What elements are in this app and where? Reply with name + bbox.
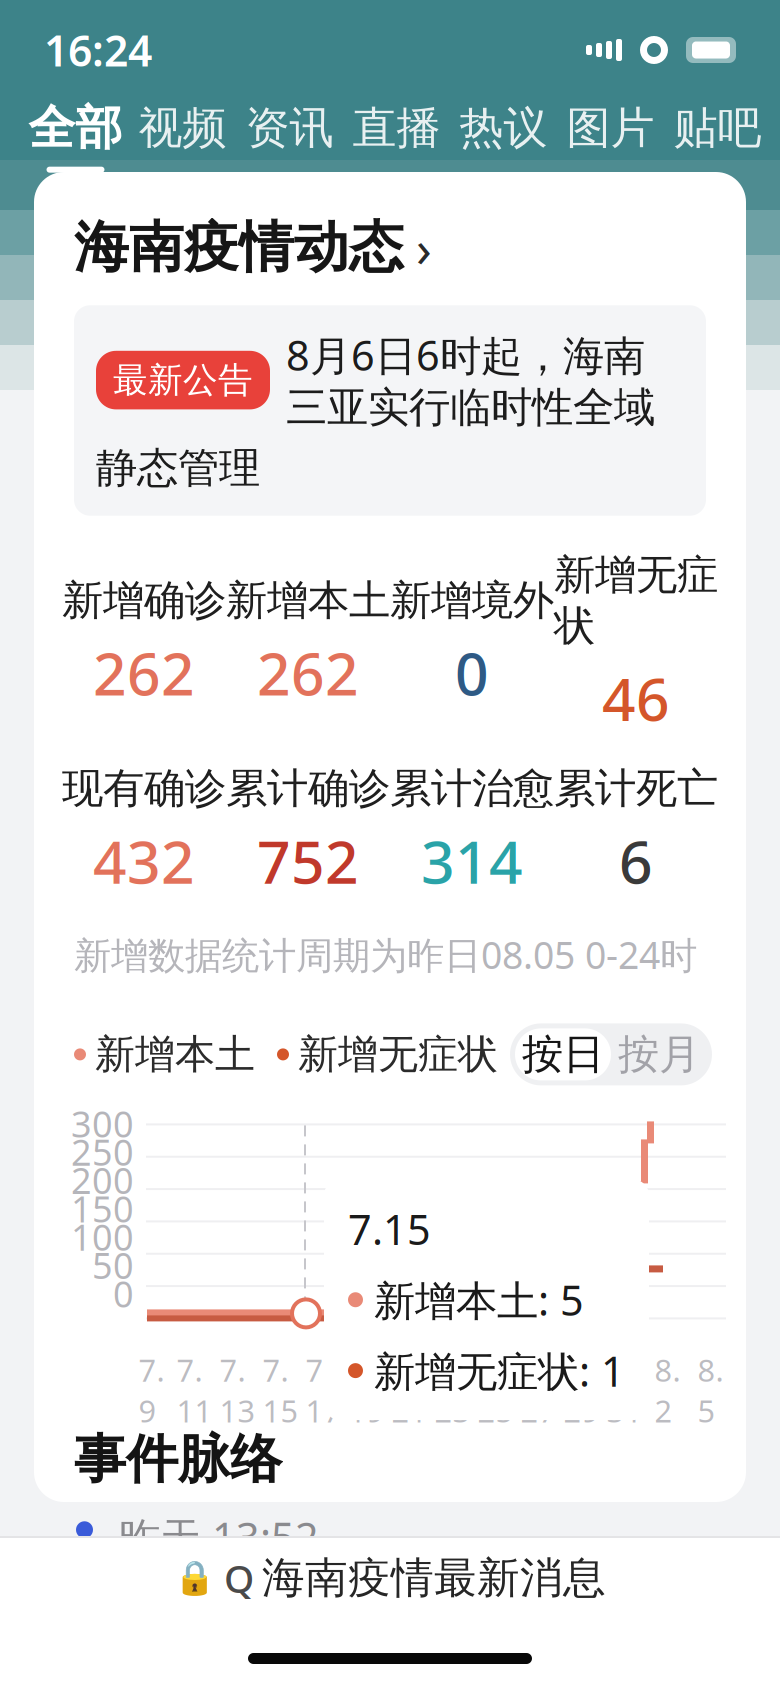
staticText: 海南疫情最新消息 — [262, 1552, 606, 1604]
staticText: 7.11 — [176, 1349, 212, 1431]
staticText: 7.15 — [348, 1201, 431, 1256]
staticText: 热议 — [459, 101, 547, 155]
staticText: 16:24 — [44, 22, 152, 78]
staticText: 毒株传播力略强于既往毒株 — [434, 1576, 704, 1688]
staticText: 7.13 — [219, 1349, 255, 1431]
staticText: 最新公告 — [113, 359, 253, 401]
staticText: 150 — [71, 1184, 134, 1232]
staticText: 0 — [113, 1269, 134, 1317]
staticText: 新增本土 — [95, 1030, 255, 1079]
staticText: 按月 — [618, 1029, 700, 1080]
staticText: 疫情 — [344, 1604, 434, 1660]
staticText: 8.5 — [697, 1349, 723, 1431]
staticText: 46 — [602, 659, 670, 737]
staticText: 新增确诊 — [62, 575, 226, 626]
staticText: › — [416, 214, 432, 281]
staticText: 100 — [71, 1213, 134, 1261]
staticText: 累计治愈 — [390, 763, 554, 814]
staticText: Q — [224, 1552, 254, 1604]
staticText: ：本轮 — [209, 1604, 344, 1660]
button[interactable]: 海南疫情动态 — [34, 172, 746, 305]
button[interactable]: 图片 — [557, 100, 664, 172]
staticText: 7.19 — [348, 1349, 384, 1431]
staticText: 新增无症状 — [554, 550, 718, 651]
button[interactable]: 直播 — [343, 100, 450, 172]
button[interactable]: 全部 — [22, 100, 129, 172]
staticText: 新增境外 — [390, 575, 554, 626]
staticText: 8.2 — [654, 1349, 680, 1431]
staticText: 262 — [257, 634, 359, 712]
button[interactable]: 最新公告 — [34, 305, 706, 516]
staticText: 7.15 — [262, 1349, 298, 1431]
staticText: 262 — [93, 634, 195, 712]
button[interactable]: 视频 — [129, 100, 236, 172]
staticText: 7.23 — [434, 1349, 470, 1431]
staticText: 🔒 — [174, 1559, 216, 1597]
staticText: 0 — [455, 634, 489, 712]
staticText: 视频 — [138, 101, 226, 155]
button[interactable]: 资讯 — [236, 100, 343, 172]
staticText: 7.29 — [563, 1349, 599, 1431]
staticText: 6 — [619, 822, 653, 900]
staticText: 7.21 — [391, 1349, 427, 1431]
staticText: 7.31 — [606, 1349, 642, 1431]
button[interactable]: 热议 — [450, 100, 557, 172]
staticText: 432 — [93, 822, 195, 900]
staticText: 新增无症状 — [298, 1030, 498, 1079]
staticText: 累计确诊 — [226, 763, 390, 814]
staticText: 贴吧 — [673, 101, 761, 155]
staticText: 昨天 13:52 — [119, 1509, 319, 1564]
staticText: 现有确诊 — [62, 763, 226, 814]
staticText: 静态管理 — [96, 443, 260, 494]
staticText: 7.27 — [520, 1349, 556, 1431]
staticText: 全部 — [28, 99, 122, 157]
button[interactable]: 按月 — [611, 1028, 707, 1080]
staticText: 新增本土 — [226, 575, 390, 626]
staticText: 752 — [257, 822, 359, 900]
staticText: 300 — [71, 1099, 134, 1147]
staticText: 新增数据统计周期为昨日08.05 0-24时 — [74, 930, 697, 979]
button[interactable]: 按日 — [515, 1028, 611, 1080]
staticText: 图片 — [566, 101, 654, 155]
button[interactable]: 🔒 — [0, 1538, 780, 1618]
staticText: 事件脉络 — [74, 1427, 282, 1491]
staticText: 7.17 — [305, 1349, 341, 1431]
staticText: 按日 — [522, 1029, 604, 1080]
staticText: 314 — [421, 822, 523, 900]
staticText: 直播 — [352, 101, 440, 155]
staticText: 7.25 — [477, 1349, 513, 1431]
button[interactable]: 昨天 13:52 — [34, 1509, 746, 1688]
staticText: 新增本土: 5 — [374, 1272, 584, 1327]
staticText: 250 — [71, 1128, 134, 1176]
staticText: 200 — [71, 1156, 134, 1204]
staticText: 新增无症状: 1 — [374, 1343, 625, 1398]
staticText: 7.9 — [138, 1349, 164, 1431]
staticText: 资讯 — [245, 101, 333, 155]
button[interactable]: 贴吧 — [664, 100, 771, 172]
staticText: 50 — [92, 1241, 134, 1289]
staticText: 海南疫情动态 — [74, 214, 404, 281]
staticText: 累计死亡 — [554, 763, 718, 814]
staticText: 8月6日6时起，海南三亚实行临时性全域 — [286, 327, 655, 433]
